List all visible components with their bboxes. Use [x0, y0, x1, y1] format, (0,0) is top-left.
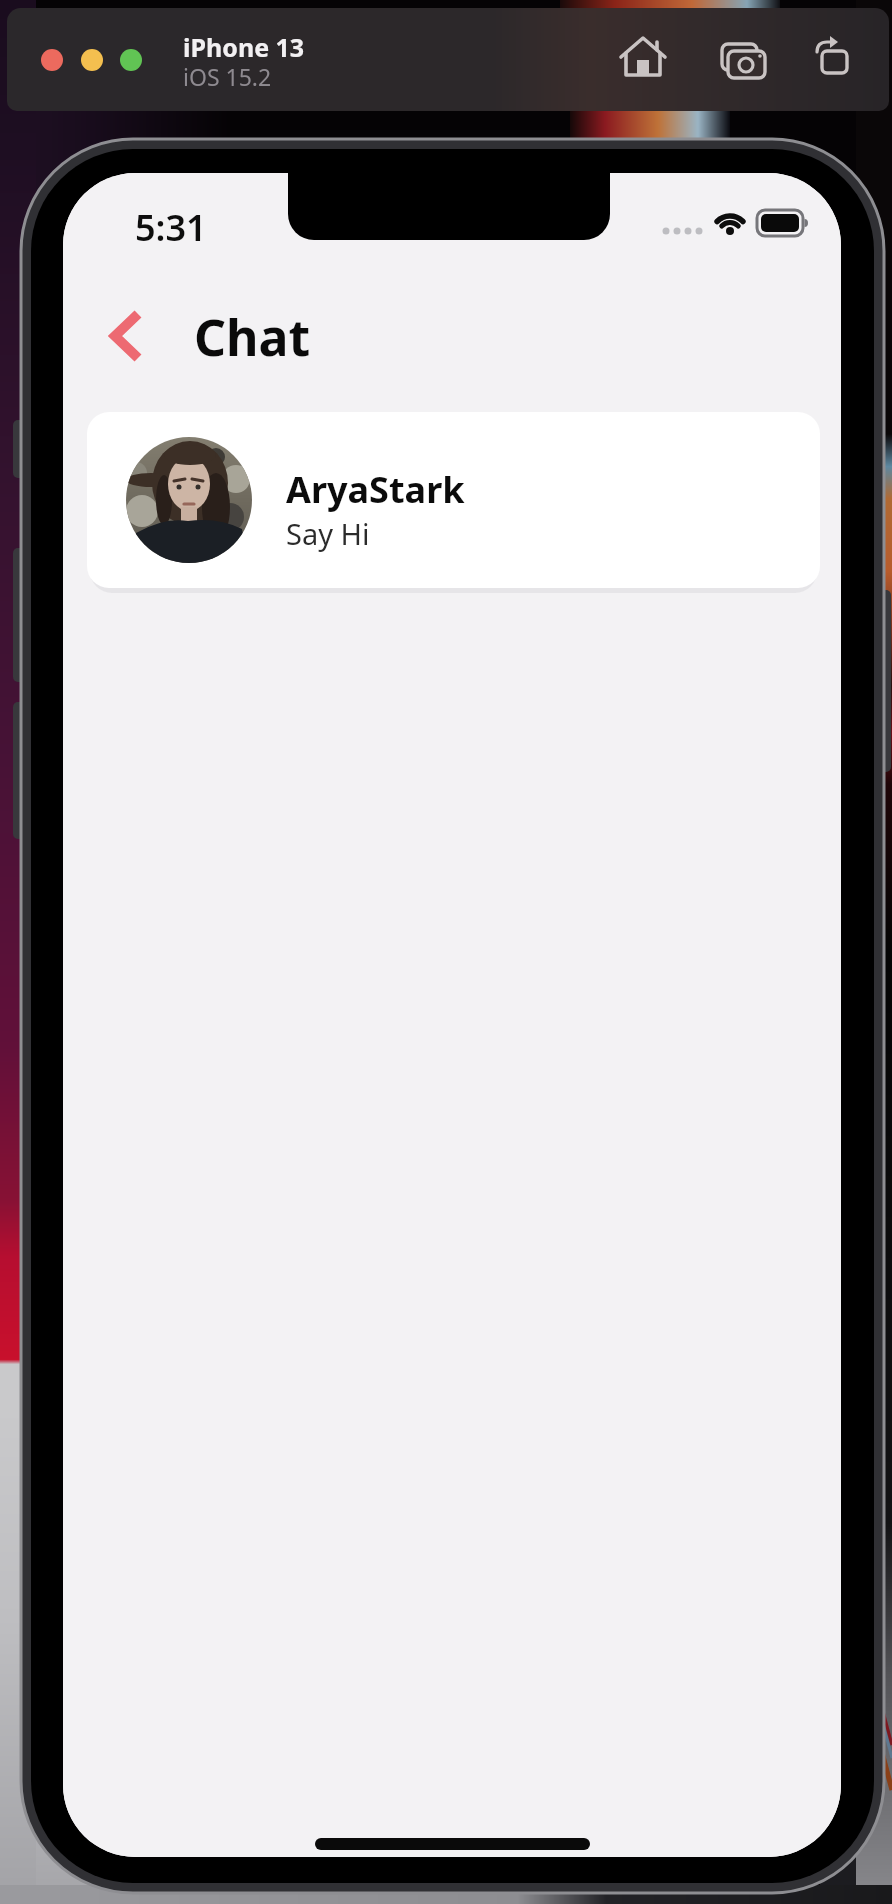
button[interactable]: [41, 49, 63, 71]
staticText: 5:31: [135, 203, 207, 252]
button[interactable]: [97, 303, 157, 373]
staticText: iPhone 13: [183, 30, 305, 64]
button[interactable]: [315, 1838, 590, 1850]
button[interactable]: [612, 30, 680, 98]
button[interactable]: [120, 49, 142, 71]
button[interactable]: [710, 30, 778, 98]
button[interactable]: AryaStark: [87, 412, 820, 588]
staticText: iOS 15.2: [183, 61, 272, 92]
staticText: Chat: [194, 303, 311, 371]
staticText: AryaStark: [286, 465, 465, 514]
staticText: Say Hi: [286, 514, 370, 553]
button[interactable]: [805, 30, 873, 98]
button[interactable]: [81, 49, 103, 71]
